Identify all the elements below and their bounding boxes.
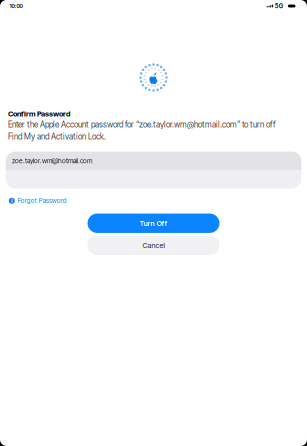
staticText: zoe.taylor.wm@hotmail.com xyxy=(12,157,92,165)
staticText: i xyxy=(11,197,12,204)
button[interactable]: i xyxy=(0,195,67,206)
button[interactable]: Turn Off xyxy=(87,213,219,233)
staticText: 10:00 xyxy=(10,3,23,9)
staticText: Turn Off xyxy=(139,219,167,228)
staticText: 5G xyxy=(275,2,283,10)
staticText: Find My and Activation Lock. xyxy=(8,132,106,141)
staticText: Forgot Password xyxy=(18,197,67,205)
staticText: Enter the Apple Account password for “zo… xyxy=(8,120,276,129)
staticText: Confirm Password xyxy=(8,109,70,118)
staticText: Cancel xyxy=(142,241,164,250)
button[interactable]: Cancel xyxy=(87,235,219,255)
